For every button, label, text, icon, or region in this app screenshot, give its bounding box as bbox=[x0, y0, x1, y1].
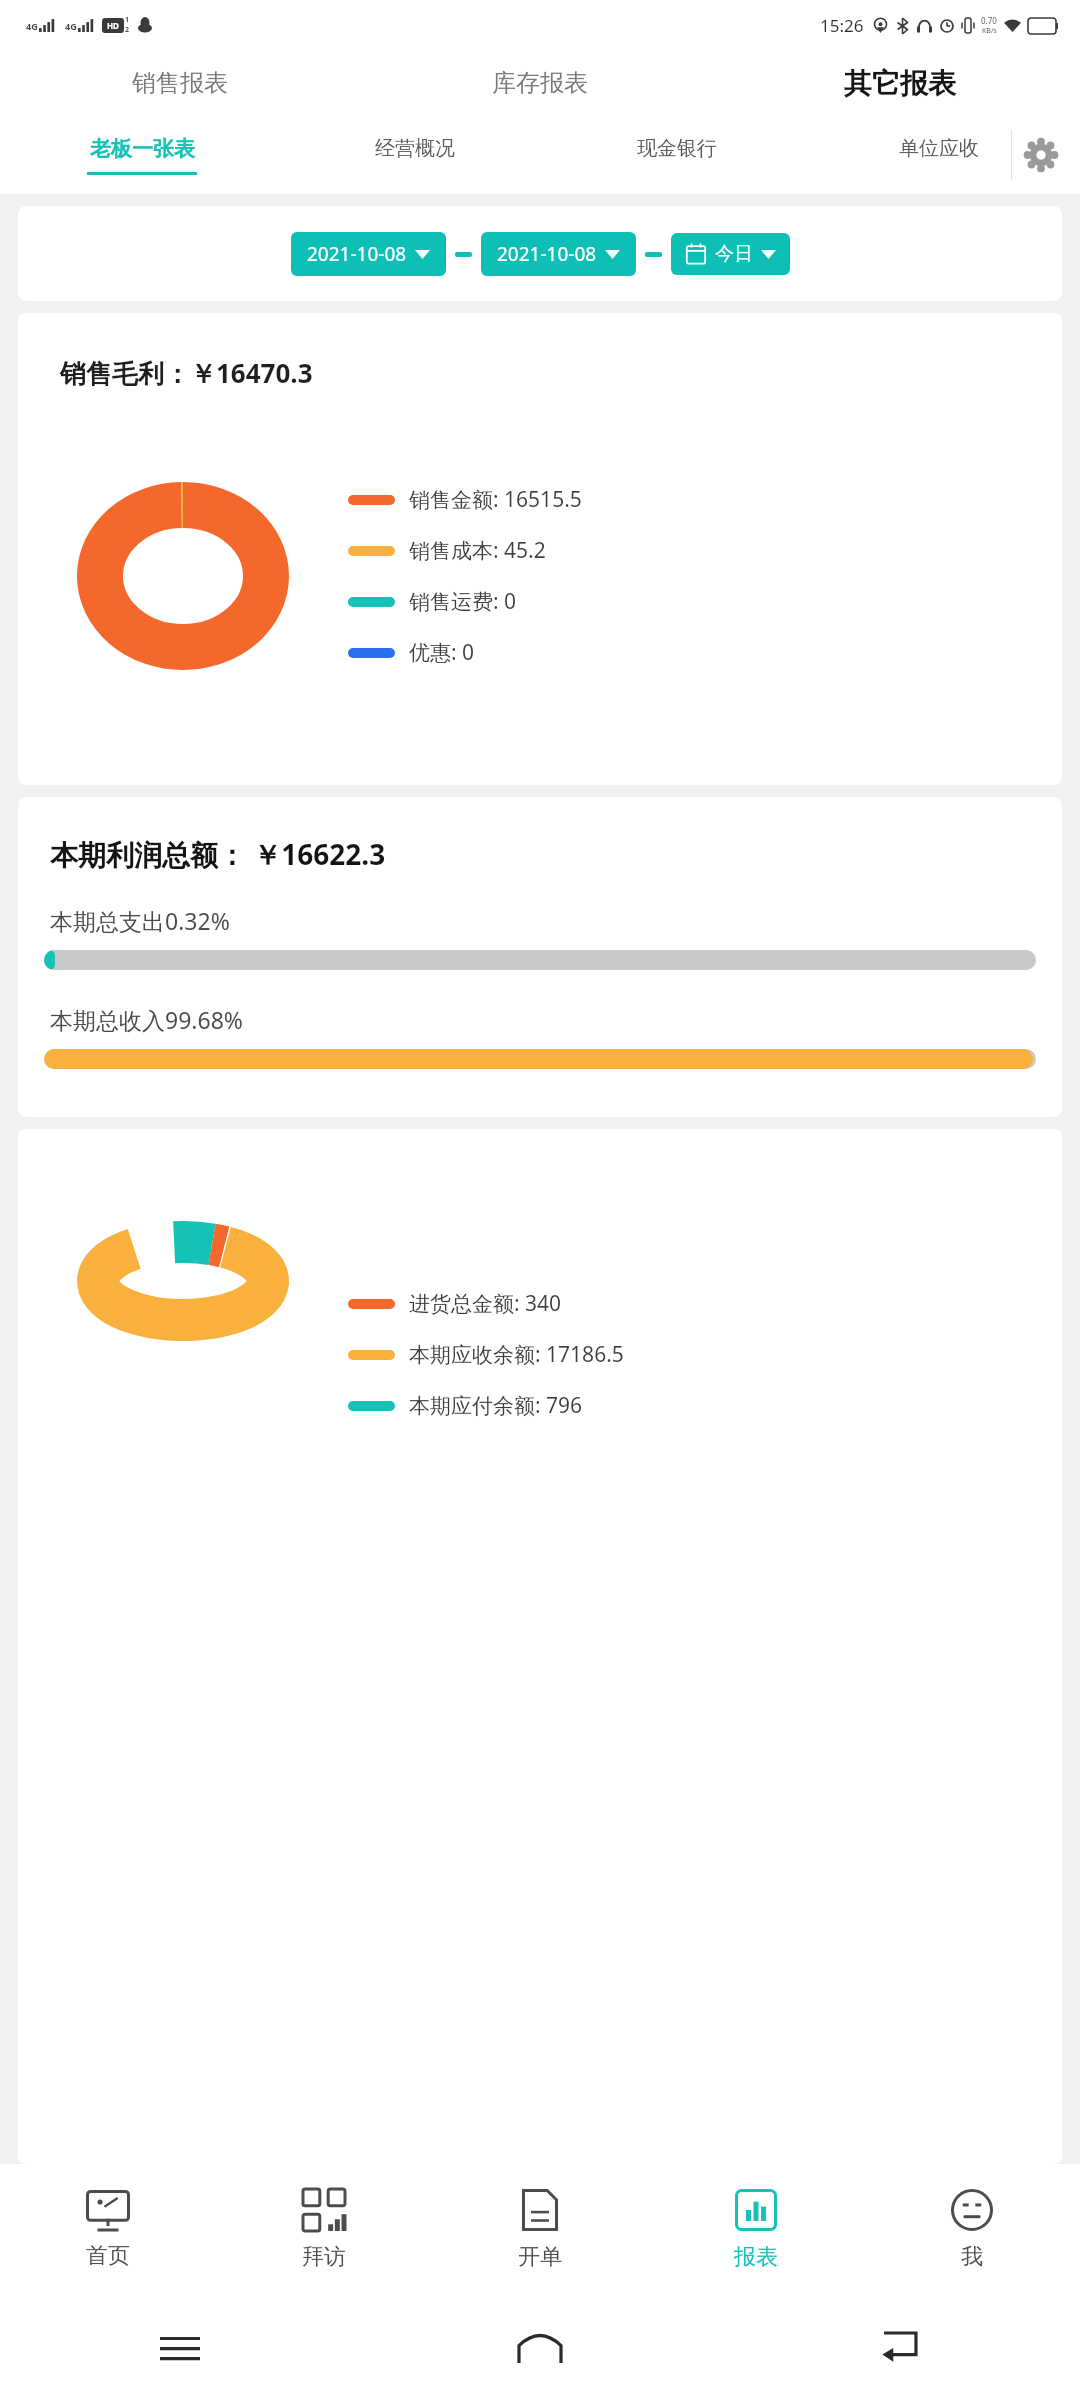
button[interactable]: Recents bbox=[0, 2296, 360, 2400]
staticText: 2021-10-08 bbox=[307, 241, 407, 267]
staticText: 2 bbox=[125, 25, 130, 35]
staticText: 其它报表 bbox=[844, 66, 956, 101]
staticText: 优惠: 0 bbox=[409, 638, 475, 667]
staticText: 首页 bbox=[86, 2242, 130, 2270]
button[interactable]: 现金银行 bbox=[546, 116, 808, 194]
button[interactable]: 2021-10-08 bbox=[481, 232, 636, 276]
staticText: 报表 bbox=[734, 2243, 778, 2271]
staticText: KB/s bbox=[982, 26, 997, 36]
staticText: 我 bbox=[961, 2243, 983, 2271]
staticText: 老板一张表 bbox=[90, 136, 195, 162]
button[interactable]: 2021-10-08 bbox=[291, 232, 446, 276]
button[interactable]: 今日 bbox=[671, 233, 790, 275]
staticText: 今日 bbox=[715, 242, 753, 266]
staticText: 销售毛利：￥16470.3 bbox=[60, 355, 313, 391]
staticText: 4G bbox=[26, 20, 38, 32]
button[interactable]: 开单 bbox=[432, 2164, 648, 2296]
staticText: 开单 bbox=[518, 2243, 562, 2271]
staticText: 4G bbox=[65, 20, 77, 32]
staticText: 销售报表 bbox=[132, 68, 228, 98]
button[interactable]: 拜访 bbox=[216, 2164, 432, 2296]
staticText: HD bbox=[107, 20, 119, 31]
staticText: 0.70 bbox=[981, 15, 997, 26]
staticText: 1 bbox=[125, 15, 130, 25]
staticText: 销售运费: 0 bbox=[409, 587, 517, 616]
staticText: 本期应收余额: 17186.5 bbox=[409, 1340, 624, 1369]
staticText: 拜访 bbox=[302, 2243, 346, 2271]
staticText: 库存报表 bbox=[492, 68, 588, 98]
staticText: 销售金额: 16515.5 bbox=[409, 485, 582, 514]
staticText: 经营概况 bbox=[375, 136, 455, 161]
staticText: 15:26 bbox=[820, 14, 864, 37]
button[interactable]: Back bbox=[720, 2296, 1080, 2400]
button[interactable]: Settings bbox=[1018, 132, 1064, 178]
staticText: 本期总支出0.32% bbox=[50, 905, 230, 936]
staticText: 进货总金额: 340 bbox=[409, 1289, 562, 1318]
staticText: 单位应收 bbox=[899, 136, 979, 161]
button[interactable]: 单位应收 bbox=[808, 116, 1070, 194]
button[interactable]: 销售报表 bbox=[0, 50, 360, 116]
button[interactable]: Home bbox=[360, 2296, 720, 2400]
button[interactable]: 首页 bbox=[0, 2164, 216, 2296]
staticText: 2021-10-08 bbox=[497, 241, 597, 267]
staticText: 本期总收入99.68% bbox=[50, 1004, 243, 1035]
button[interactable]: 库存报表 bbox=[360, 50, 720, 116]
button[interactable]: 报表 bbox=[648, 2164, 864, 2296]
button[interactable]: 老板一张表 bbox=[0, 116, 284, 194]
button[interactable]: 其它报表 bbox=[720, 50, 1080, 116]
staticText: 本期利润总额： ￥16622.3 bbox=[50, 835, 386, 873]
staticText: 现金银行 bbox=[637, 136, 717, 161]
staticText: 本期应付余额: 796 bbox=[409, 1391, 583, 1420]
button[interactable]: 经营概况 bbox=[284, 116, 546, 194]
staticText: 销售成本: 45.2 bbox=[409, 536, 546, 565]
button[interactable]: 我 bbox=[864, 2164, 1080, 2296]
